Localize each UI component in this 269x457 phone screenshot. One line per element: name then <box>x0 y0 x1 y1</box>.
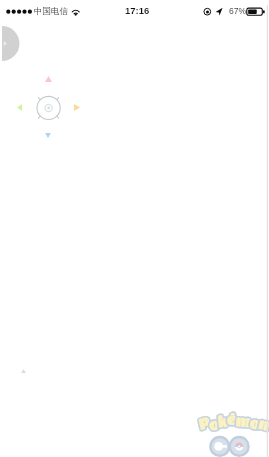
staticText: k <box>217 412 229 430</box>
staticText: k <box>217 412 229 430</box>
staticText: o <box>248 413 262 433</box>
button[interactable]: Open menu <box>2 26 20 61</box>
staticText: 中国电信 <box>34 6 68 17</box>
staticText: n <box>257 414 269 434</box>
staticText: P <box>197 413 212 433</box>
staticText: é <box>227 410 237 428</box>
button[interactable]: Recenter <box>33 92 64 123</box>
staticText: 17:16 <box>125 5 150 16</box>
staticText: P <box>197 413 212 433</box>
staticText: é <box>227 410 237 428</box>
staticText: o <box>208 414 221 434</box>
button[interactable]: Move left <box>17 104 22 111</box>
button[interactable]: Move right <box>74 104 80 111</box>
staticText: n <box>257 414 269 434</box>
staticText: 67% <box>229 6 247 15</box>
button[interactable]: Move down <box>45 133 51 138</box>
staticText: m <box>235 411 253 431</box>
staticText: m <box>235 411 253 431</box>
staticText: o <box>248 413 262 433</box>
staticText: o <box>208 414 221 434</box>
button[interactable]: Move up <box>45 76 52 82</box>
